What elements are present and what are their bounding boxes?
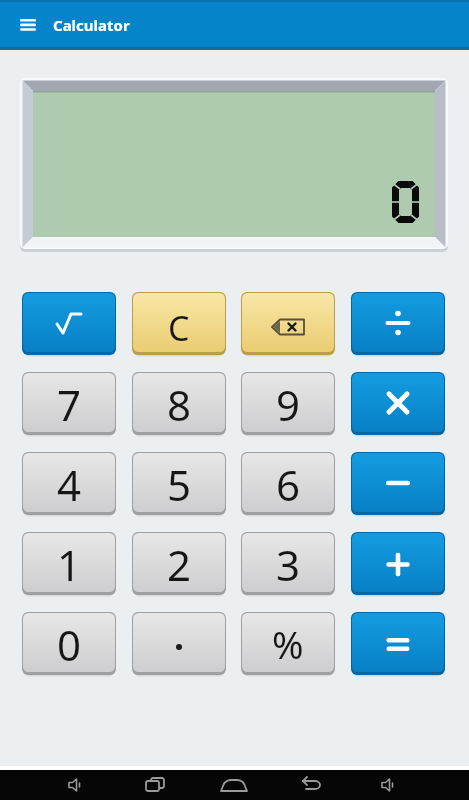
button[interactable]	[140, 770, 170, 800]
button[interactable]	[351, 292, 445, 356]
button[interactable]	[296, 770, 326, 800]
button[interactable]	[4, 2, 52, 48]
staticText: 2	[167, 536, 192, 593]
button[interactable]: 9	[241, 372, 335, 436]
button[interactable]: 3	[241, 532, 335, 596]
button[interactable]	[132, 612, 226, 676]
button[interactable]: 4	[22, 452, 116, 516]
button[interactable]	[373, 770, 403, 800]
staticText: 4	[57, 456, 82, 513]
button[interactable]	[351, 372, 445, 436]
button[interactable]: 6	[241, 452, 335, 516]
button[interactable]	[241, 292, 335, 356]
staticText: 0	[57, 616, 82, 673]
button[interactable]: 5	[132, 452, 226, 516]
staticText: %	[272, 618, 304, 670]
button[interactable]	[219, 770, 249, 800]
button[interactable]: 7	[22, 372, 116, 436]
button[interactable]	[351, 612, 445, 676]
staticText: 5	[167, 456, 192, 513]
button[interactable]	[351, 452, 445, 516]
staticText: 7	[57, 376, 82, 433]
staticText: 6	[276, 456, 301, 513]
staticText: 8	[167, 376, 192, 433]
button[interactable]	[60, 770, 90, 800]
staticText: 1	[57, 536, 82, 593]
button[interactable]: C	[132, 292, 226, 356]
button[interactable]: %	[241, 612, 335, 676]
button[interactable]	[22, 292, 116, 356]
button[interactable]: 1	[22, 532, 116, 596]
button[interactable]: 0	[22, 612, 116, 676]
button[interactable]: 8	[132, 372, 226, 436]
staticText: Calculator	[53, 15, 130, 35]
staticText: C	[168, 305, 190, 351]
staticText: 9	[276, 376, 301, 433]
staticText: 3	[276, 536, 301, 593]
button[interactable]: 2	[132, 532, 226, 596]
button[interactable]	[351, 532, 445, 596]
